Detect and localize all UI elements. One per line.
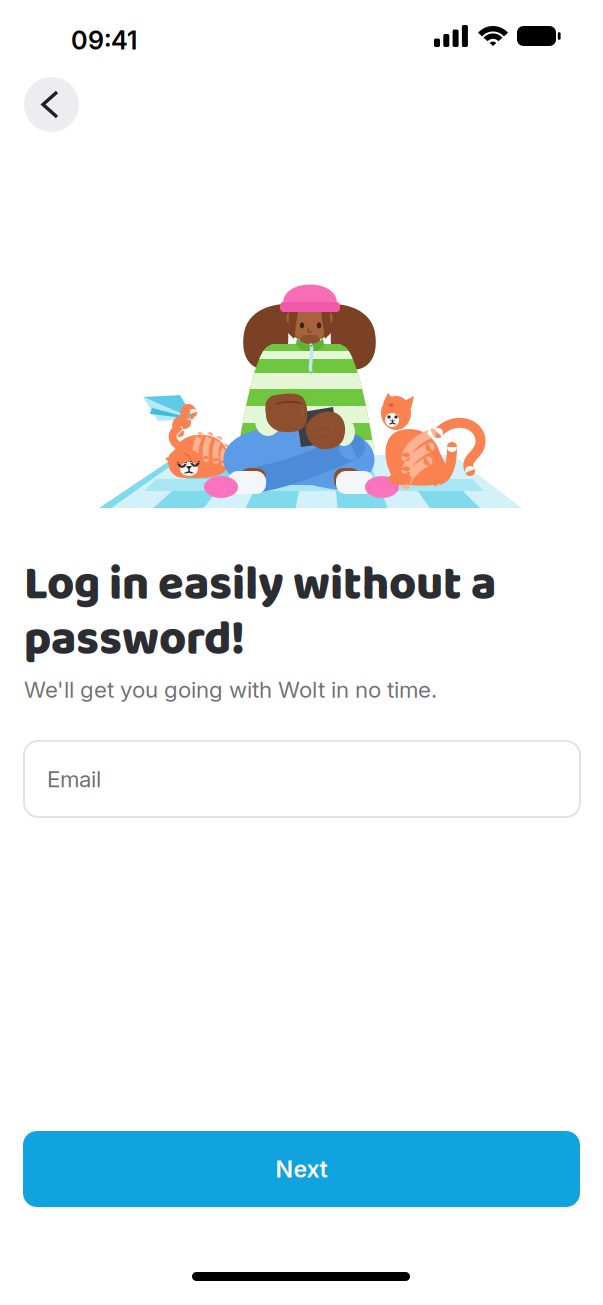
staticText: Log in easily without a <box>24 548 496 623</box>
button[interactable]: Back <box>24 77 79 132</box>
staticText: 09:41 <box>71 25 137 56</box>
staticText: We'll get you going with Wolt in no time… <box>24 676 437 703</box>
staticText: Email <box>47 765 101 792</box>
button[interactable]: Email <box>24 741 580 817</box>
staticText: password! <box>24 603 245 678</box>
button[interactable]: Next <box>23 1131 580 1207</box>
staticText: Next <box>275 1155 327 1183</box>
